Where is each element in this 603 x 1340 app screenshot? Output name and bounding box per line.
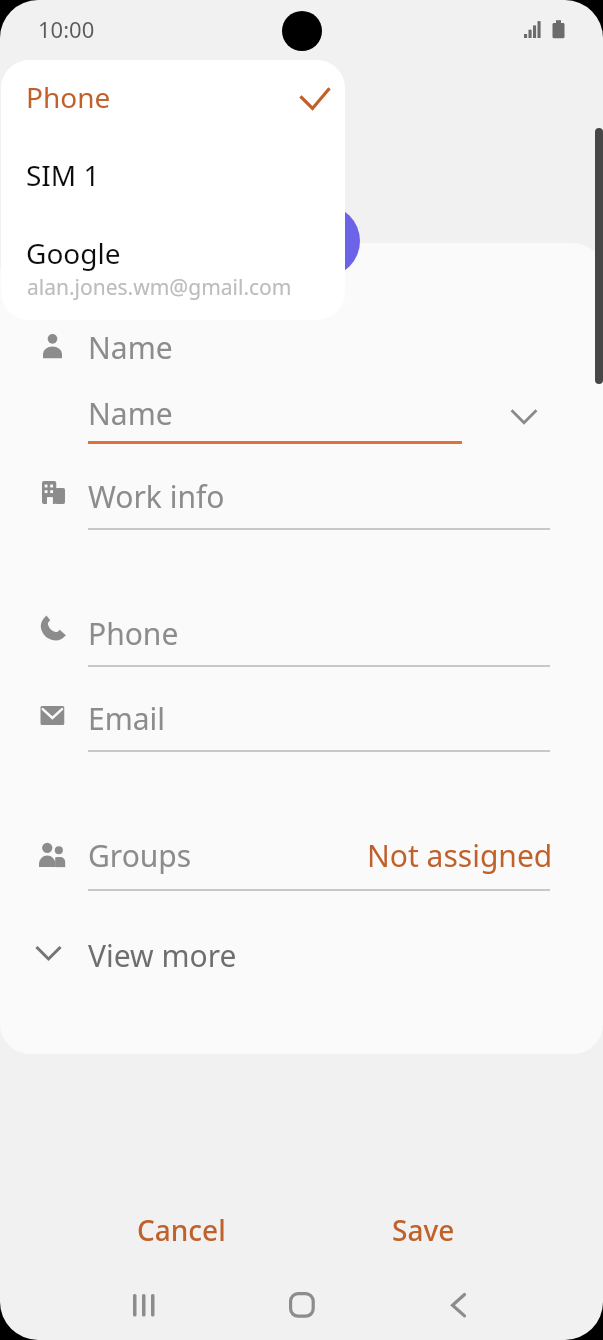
staticText: Name [88, 393, 173, 434]
button[interactable]: Phone [1, 60, 345, 138]
staticText: 10:00 [38, 14, 95, 44]
button[interactable]: Phone [0, 615, 603, 675]
staticText: Google [26, 234, 121, 272]
button[interactable]: Recent apps [104, 1276, 184, 1340]
button[interactable]: Email [0, 700, 603, 760]
staticText: Email [88, 698, 166, 739]
staticText: Not assigned [367, 835, 553, 876]
button[interactable]: SIM 1 [1, 138, 345, 216]
staticText: Groups [88, 835, 192, 876]
staticText: Work info [88, 476, 225, 517]
button[interactable]: Home [261, 1276, 341, 1340]
button[interactable]: Name [0, 391, 603, 447]
staticText: Phone [88, 613, 179, 654]
button[interactable]: View more [0, 935, 603, 977]
staticText: Name [88, 327, 173, 368]
staticText: View more [88, 935, 237, 976]
button[interactable]: Cancel [0, 1200, 363, 1260]
staticText: SIM 1 [26, 156, 100, 194]
staticText: Save [392, 1211, 455, 1249]
button[interactable]: Groups [0, 837, 603, 897]
button[interactable]: Save [363, 1200, 483, 1260]
button[interactable]: Back [419, 1276, 499, 1340]
button[interactable]: Expand name [511, 404, 537, 430]
button[interactable]: Google [1, 216, 345, 320]
staticText: alan.jones.wm@gmail.com [27, 273, 292, 302]
staticText: Cancel [137, 1211, 226, 1249]
button[interactable]: Work info [0, 478, 603, 538]
staticText: Phone [26, 78, 111, 116]
